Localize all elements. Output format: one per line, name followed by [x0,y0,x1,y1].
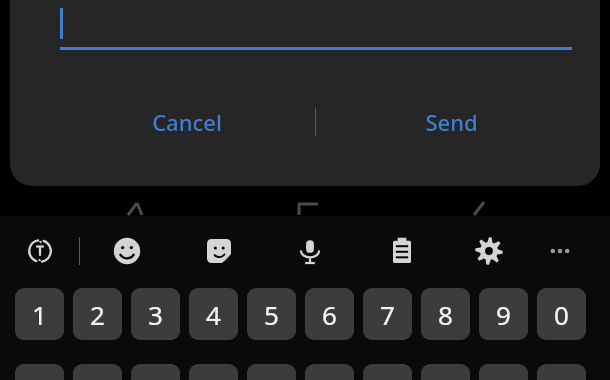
button[interactable] [15,364,64,380]
button[interactable] [421,364,470,380]
button[interactable] [189,364,238,380]
button[interactable]: 1 [15,288,64,340]
staticText: 3 [148,297,163,332]
staticText: 9 [496,297,511,332]
button[interactable]: Clipboard [380,229,424,273]
staticText: 6 [322,297,337,332]
staticText: Send [425,107,478,137]
button[interactable]: 7 [363,288,412,340]
staticText: 0 [554,297,569,332]
button[interactable]: Voice input [288,229,332,273]
button[interactable]: 9 [479,288,528,340]
staticText: 7 [380,297,395,332]
button[interactable]: Settings [467,229,511,273]
button[interactable]: 6 [305,288,354,340]
button[interactable]: Stickers [197,229,241,273]
button[interactable]: 8 [421,288,470,340]
button[interactable] [131,364,180,380]
button[interactable] [50,0,572,60]
button[interactable]: Cancel [114,97,260,147]
button[interactable] [479,364,528,380]
button[interactable]: 2 [73,288,122,340]
button[interactable] [305,364,354,380]
button[interactable] [537,364,586,380]
button[interactable]: More options [538,229,582,273]
button[interactable]: 3 [131,288,180,340]
staticText: 5 [264,297,279,332]
staticText: 2 [90,297,105,332]
button[interactable] [363,364,412,380]
staticText: Cancel [152,107,222,137]
button[interactable]: 4 [189,288,238,340]
button[interactable] [73,364,122,380]
button[interactable]: Translate [18,229,62,273]
button[interactable]: Emoji [105,229,149,273]
button[interactable] [247,364,296,380]
button[interactable]: Send [378,97,524,147]
staticText: 8 [438,297,453,332]
staticText: 4 [206,297,221,332]
staticText: 1 [32,297,47,332]
button[interactable]: 0 [537,288,586,340]
button[interactable]: 5 [247,288,296,340]
